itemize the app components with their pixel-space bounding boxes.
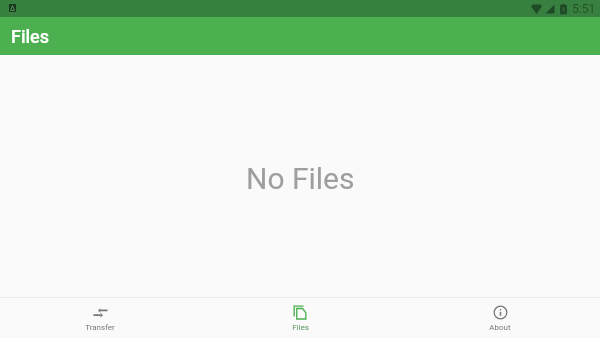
staticText: Files [11,26,50,47]
button[interactable]: Transfer [0,298,200,338]
button[interactable]: About [400,298,600,338]
staticText: Files [292,323,309,332]
staticText: 5:51 [572,2,596,16]
staticText: Transfer [85,323,115,332]
staticText: About [489,323,511,332]
button[interactable]: Files [200,298,400,338]
staticText: No Files [246,161,355,196]
